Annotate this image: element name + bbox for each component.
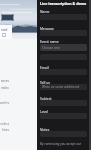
staticText: lines — [2, 128, 9, 132]
staticText: Live transcription & demo form — [40, 1, 88, 6]
staticText: Choose one — [42, 46, 60, 50]
staticText: By continuing you accept our terms and p… — [40, 142, 87, 146]
staticText: Event name — [40, 39, 59, 43]
staticText: Tell us — [40, 80, 50, 84]
staticText: archive — [0, 101, 9, 105]
button[interactable]: Play — [1, 14, 14, 21]
button[interactable]: read — [0, 25, 12, 39]
staticText: read — [1, 28, 8, 32]
staticText: index — [0, 86, 9, 90]
button[interactable]: Choose one — [40, 44, 87, 51]
staticText: notes — [0, 79, 9, 83]
button[interactable]: select — [0, 121, 9, 126]
staticText: Message — [40, 26, 54, 30]
staticText: Email — [40, 65, 49, 69]
staticText: Subject — [40, 96, 52, 100]
staticText: Level — [40, 109, 49, 113]
button[interactable]: archive — [0, 100, 9, 105]
button[interactable]: Write us some additional detail — [40, 84, 87, 90]
button[interactable]: Live transcription & demo form — [37, 0, 91, 150]
staticText: Name — [40, 9, 50, 13]
button[interactable]: notes — [0, 78, 9, 83]
staticText: Write us some additional detail — [42, 85, 85, 89]
staticText: Notes — [40, 127, 50, 131]
staticText: select — [0, 122, 9, 126]
button[interactable]: lines — [0, 127, 9, 132]
button[interactable]: index — [0, 85, 9, 90]
